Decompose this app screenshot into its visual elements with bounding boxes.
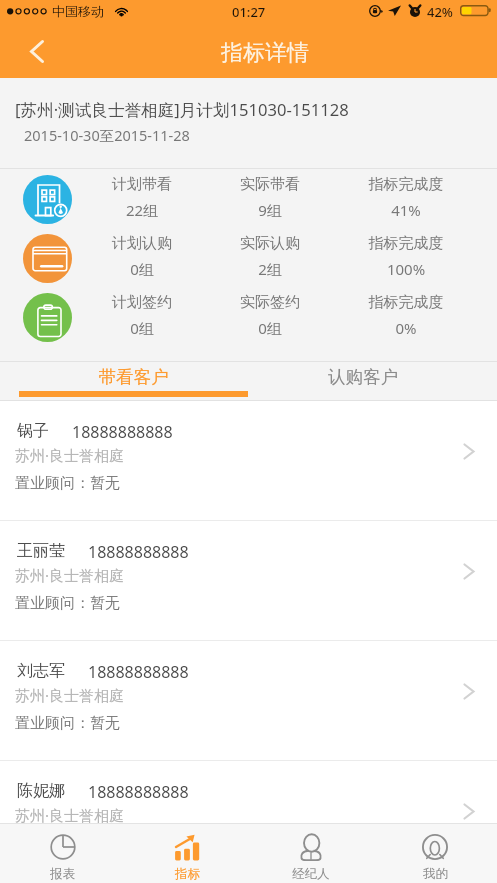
button[interactable]: 刘志军 — [0, 641, 497, 760]
staticText: 18888888888 — [88, 781, 189, 803]
staticText: 锅子 — [17, 421, 49, 441]
staticText: 计划认购 — [78, 234, 206, 253]
staticText: 22组 — [78, 200, 206, 220]
staticText: 苏州·良士誉相庭 — [15, 565, 125, 585]
staticText: 指标完成度 — [334, 293, 478, 312]
button[interactable]: 锅子 — [0, 401, 497, 520]
button[interactable]: Back — [15, 29, 59, 73]
staticText: 我的 — [423, 866, 448, 882]
button[interactable]: 带看客户 — [19, 362, 248, 400]
staticText: 刘志军 — [17, 661, 65, 681]
staticText: 9组 — [206, 200, 334, 220]
staticText: 0组 — [206, 318, 334, 338]
staticText: 带看客户 — [19, 366, 248, 388]
staticText: [苏州·测试良士誉相庭]月计划151030-151128 — [15, 98, 349, 121]
staticText: 中国移动 — [52, 3, 104, 19]
staticText: 41% — [334, 200, 478, 220]
button[interactable]: 指标 — [125, 824, 249, 883]
staticText: 实际带看 — [206, 175, 334, 194]
staticText: 指标详情 — [221, 39, 309, 67]
staticText: 苏州·良士誉相庭 — [15, 685, 125, 705]
button[interactable]: 经纪人 — [249, 824, 373, 883]
staticText: 01:27 — [232, 3, 266, 21]
staticText: 置业顾问：暂无 — [15, 474, 120, 493]
staticText: 置业顾问：暂无 — [15, 714, 120, 733]
staticText: 100% — [334, 259, 478, 279]
staticText: 置业顾问：暂无 — [15, 594, 120, 613]
staticText: 0组 — [78, 259, 206, 279]
staticText: 认购客户 — [248, 366, 478, 388]
staticText: 18888888888 — [72, 421, 173, 443]
button[interactable]: 报表 — [0, 824, 125, 883]
staticText: 0组 — [78, 318, 206, 338]
staticText: 置业顾问：暂无 — [15, 834, 120, 853]
staticText: 实际签约 — [206, 293, 334, 312]
staticText: 指标完成度 — [334, 175, 478, 194]
staticText: 18888888888 — [88, 541, 189, 563]
staticText: 经纪人 — [292, 866, 330, 882]
staticText: 报表 — [50, 866, 75, 882]
staticText: 42% — [427, 3, 453, 21]
staticText: 2组 — [206, 259, 334, 279]
staticText: 实际认购 — [206, 234, 334, 253]
button[interactable]: 认购客户 — [248, 362, 478, 400]
staticText: 苏州·良士誉相庭 — [15, 445, 125, 465]
button[interactable]: 王丽莹 — [0, 521, 497, 640]
staticText: 计划签约 — [78, 293, 206, 312]
button[interactable]: 陈妮娜 — [0, 761, 497, 823]
button[interactable]: 我的 — [373, 824, 497, 883]
staticText: 陈妮娜 — [17, 781, 65, 801]
staticText: 苏州·良士誉相庭 — [15, 805, 125, 825]
staticText: 0% — [334, 318, 478, 338]
staticText: 指标 — [175, 866, 200, 882]
staticText: 指标完成度 — [334, 234, 478, 253]
staticText: 2015-10-30至2015-11-28 — [24, 125, 190, 145]
staticText: 王丽莹 — [17, 541, 65, 561]
staticText: 18888888888 — [88, 661, 189, 683]
staticText: 计划带看 — [78, 175, 206, 194]
